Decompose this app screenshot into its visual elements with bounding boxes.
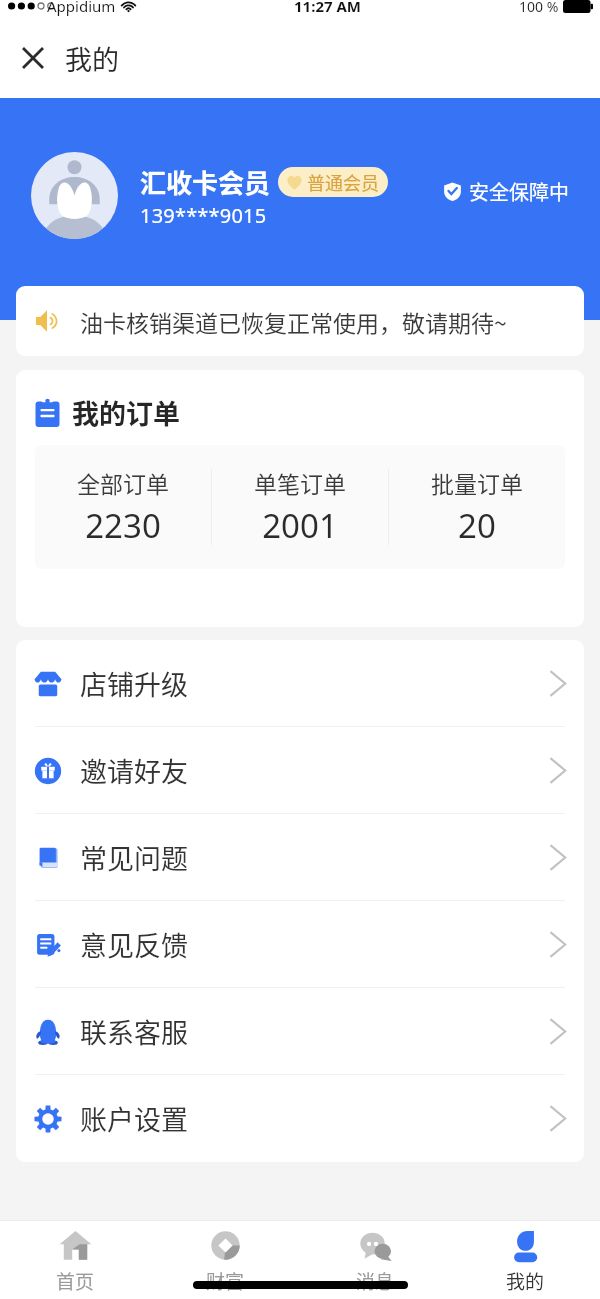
staticText: 邀请好友 (80, 751, 188, 790)
button[interactable]: 批量订单 (389, 466, 565, 548)
staticText: 100 % (519, 0, 559, 16)
button[interactable]: 消息 (300, 1220, 450, 1299)
button[interactable]: 常见问题 (16, 814, 584, 901)
button[interactable]: 邀请好友 (16, 727, 584, 814)
button[interactable]: Close (13, 38, 53, 78)
staticText: Appidium (47, 0, 116, 16)
staticText: 139****9015 (140, 202, 267, 229)
staticText: 财富 (206, 1267, 245, 1295)
staticText: 我的 (506, 1267, 545, 1295)
button[interactable]: 油卡核销渠道已恢复正常使用，敬请期待~ (16, 286, 584, 356)
staticText: 常见问题 (80, 838, 188, 877)
staticText: 2001 (262, 503, 338, 548)
staticText: 全部订单 (77, 466, 169, 499)
staticText: 批量订单 (431, 466, 523, 499)
staticText: 消息 (356, 1267, 395, 1295)
button[interactable]: 单笔订单 (212, 466, 388, 548)
button[interactable]: 首页 (0, 1220, 150, 1299)
button[interactable]: 全部订单 (35, 466, 211, 548)
staticText: 2230 (85, 503, 161, 548)
staticText: 账户设置 (80, 1099, 188, 1138)
staticText: 意见反馈 (80, 925, 188, 964)
button[interactable]: 店铺升级 (16, 640, 584, 727)
staticText: 安全保障中 (469, 177, 569, 206)
staticText: 20 (458, 503, 496, 548)
staticText: 11:27 AM (294, 0, 361, 16)
button[interactable]: 意见反馈 (16, 901, 584, 988)
staticText: 普通会员 (307, 169, 379, 195)
staticText: 我的 (65, 39, 119, 78)
button[interactable]: 联系客服 (16, 988, 584, 1075)
button[interactable]: 账户设置 (16, 1075, 584, 1162)
staticText: 我的订单 (72, 393, 180, 432)
staticText: 店铺升级 (80, 664, 188, 703)
button[interactable]: 我的 (450, 1220, 600, 1299)
staticText: 联系客服 (80, 1012, 188, 1051)
staticText: 首页 (56, 1267, 95, 1295)
staticText: 单笔订单 (254, 466, 346, 499)
staticText: 油卡核销渠道已恢复正常使用，敬请期待~ (80, 305, 507, 338)
staticText: 汇收卡会员 (140, 163, 271, 201)
button[interactable]: 财富 (150, 1220, 300, 1299)
